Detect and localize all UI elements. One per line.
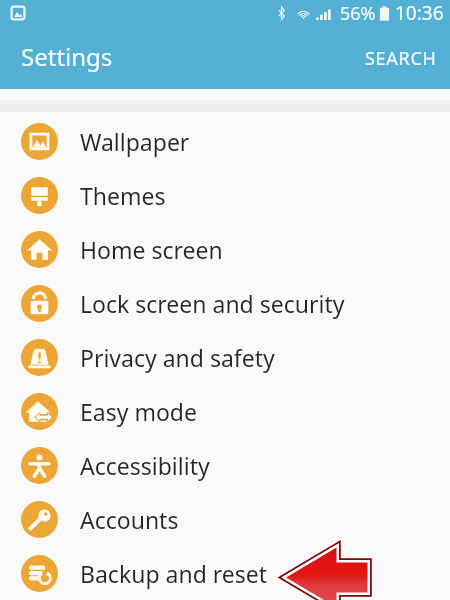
button[interactable]: Accounts: [0, 492, 450, 546]
button[interactable]: Themes: [0, 168, 450, 222]
staticText: Settings: [21, 40, 113, 73]
staticText: Accessibility: [80, 450, 210, 481]
staticText: Backup and reset: [80, 558, 268, 589]
staticText: 10:36: [395, 0, 444, 26]
staticText: SEARCH: [365, 46, 437, 71]
staticText: 56%: [340, 1, 376, 26]
button[interactable]: Lock screen and security: [0, 276, 450, 330]
staticText: Lock screen and security: [80, 288, 345, 319]
button[interactable]: Backup and reset: [0, 546, 450, 600]
staticText: Easy mode: [80, 396, 197, 427]
other: Screenshot captured: [11, 6, 25, 20]
staticText: Accounts: [80, 504, 179, 535]
staticText: Themes: [80, 180, 166, 211]
staticText: Wallpaper: [80, 126, 190, 157]
staticText: Home screen: [80, 234, 223, 265]
staticText: Privacy and safety: [80, 342, 275, 373]
button[interactable]: SEARCH: [350, 31, 450, 84]
button[interactable]: Home screen: [0, 222, 450, 276]
button[interactable]: Easy mode: [0, 384, 450, 438]
button[interactable]: Privacy and safety: [0, 330, 450, 384]
button[interactable]: Accessibility: [0, 438, 450, 492]
button[interactable]: Wallpaper: [0, 114, 450, 168]
